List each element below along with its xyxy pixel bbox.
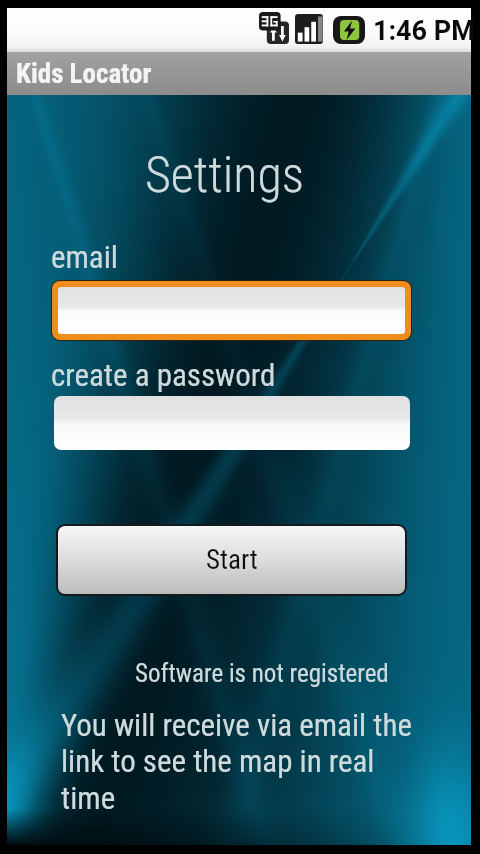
- staticText: Software is not registered: [135, 659, 389, 688]
- staticText: You will receive via email the link to s…: [61, 707, 419, 817]
- staticText: email: [51, 239, 118, 275]
- other: Battery charging: [333, 16, 365, 44]
- staticText: create a password: [51, 357, 276, 393]
- other: Mobile data 3G: [259, 12, 289, 44]
- staticText: Settings: [145, 146, 305, 205]
- button[interactable]: [54, 396, 410, 450]
- button[interactable]: [58, 287, 405, 334]
- staticText: Start: [206, 544, 258, 576]
- other: Signal strength: [295, 14, 323, 44]
- staticText: Kids Locator: [16, 58, 152, 90]
- staticText: 1:46 PM: [373, 15, 475, 47]
- button[interactable]: Start: [58, 526, 405, 594]
